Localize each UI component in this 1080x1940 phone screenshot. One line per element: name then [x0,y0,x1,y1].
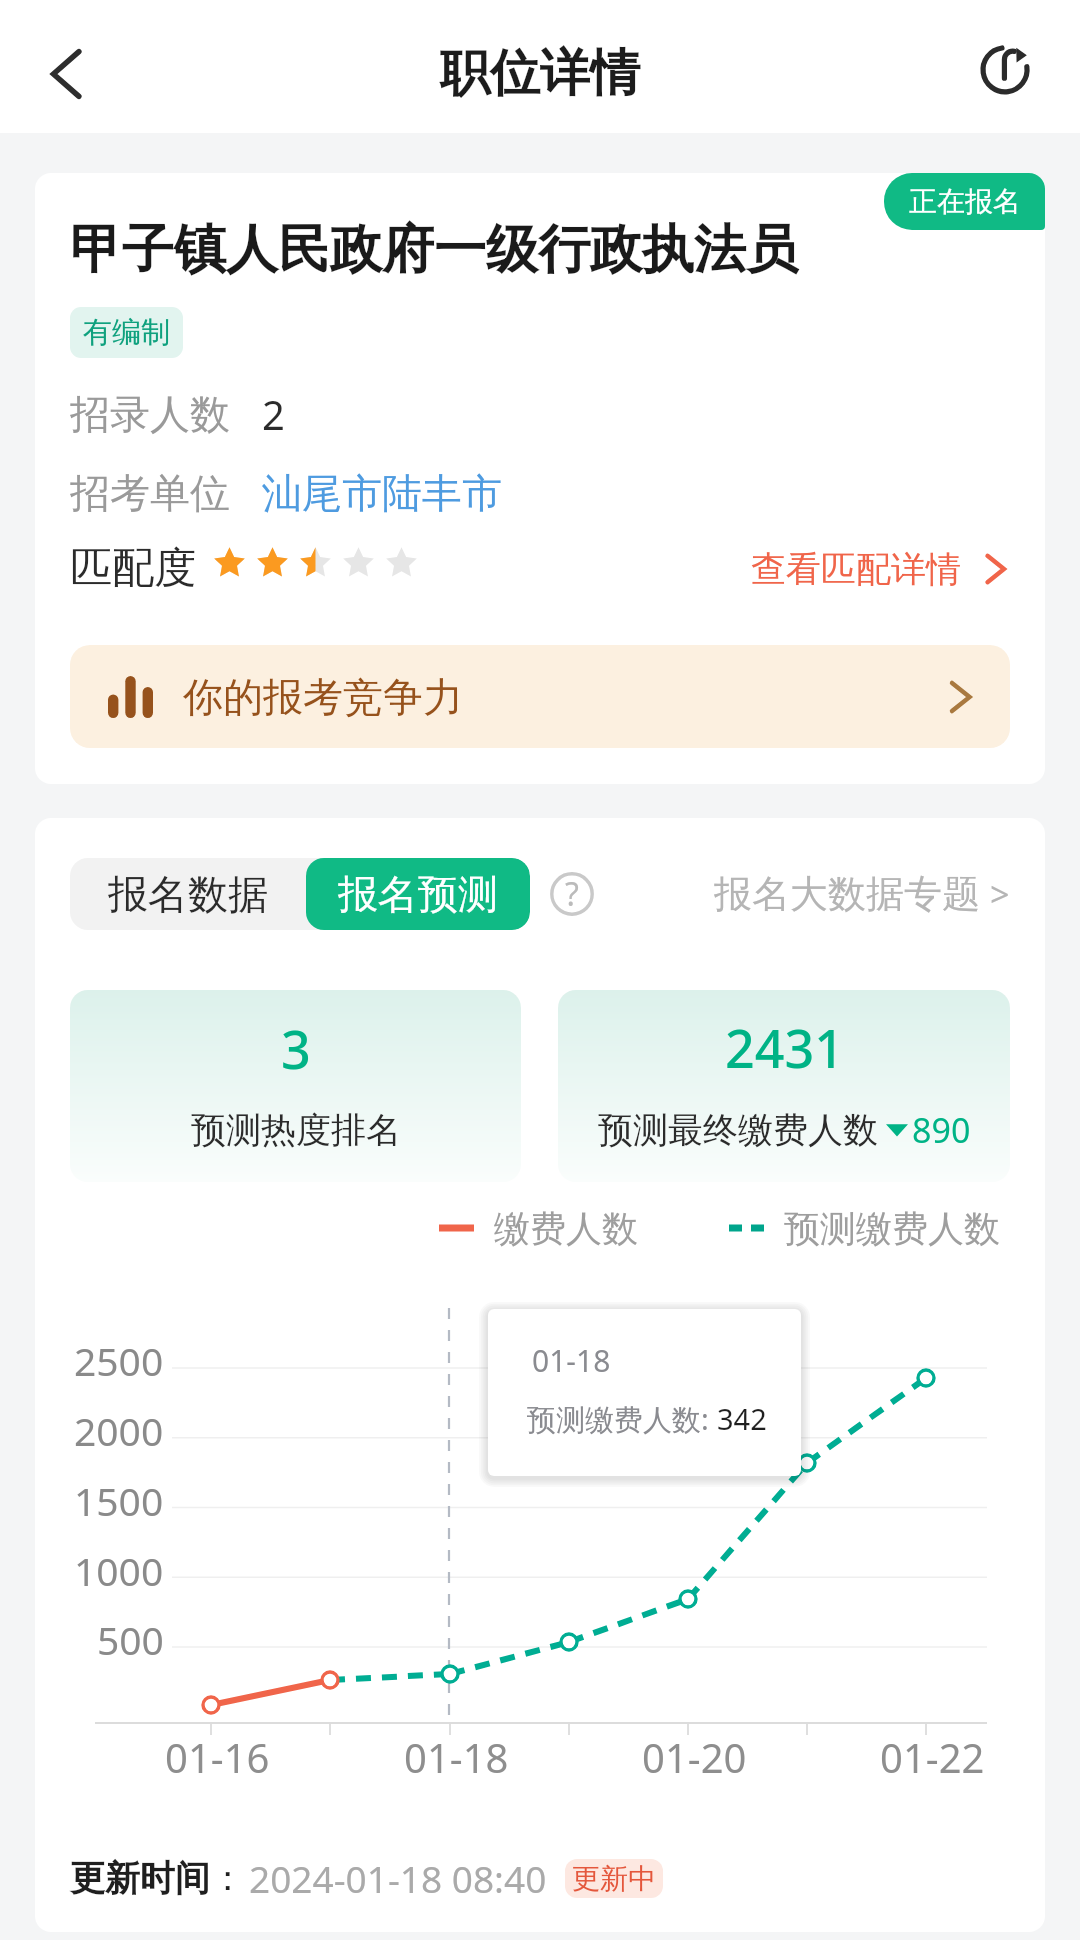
staticText: 1500 [74,1474,164,1527]
staticText: 更新中 [572,1861,656,1896]
staticText: 招考单位 [70,468,230,518]
button[interactable]: 报名预测 [306,858,530,930]
staticText: 招录人数 [70,389,230,439]
staticText: 汕尾市陆丰市 [262,468,502,518]
staticText: 01-22 [880,1730,985,1784]
staticText: 3 [281,1013,311,1084]
staticText: 预测缴费人数: [527,1399,717,1439]
button[interactable]: Back [20,28,112,120]
staticText: 缴费人数 [494,1206,638,1251]
staticText: 报名大数据专题 [714,870,980,918]
staticText: 2 [262,387,285,441]
staticText: ? [565,872,579,916]
staticText: 500 [97,1613,164,1666]
staticText: 预测最终缴费人数 [598,1108,878,1152]
staticText: 01-20 [642,1730,747,1784]
staticText: 查看匹配详情 [751,547,961,591]
staticText: 匹配度 [70,542,196,595]
button[interactable]: 查看匹配详情 [751,547,1010,591]
staticText: > [990,871,1010,917]
staticText: 1000 [74,1544,164,1597]
button[interactable]: 报名大数据专题 [714,870,1010,918]
staticText: 2024-01-18 08:40 [249,1853,547,1903]
staticText: ： [210,1856,245,1900]
staticText: 有编制 [83,314,170,351]
staticText: 890 [912,1107,971,1153]
staticText: 01-18 [404,1730,509,1784]
staticText: 01-18 [532,1340,611,1381]
staticText: 2500 [74,1334,164,1387]
staticText: 正在报名 [909,184,1021,219]
staticText: 预测缴费人数 [784,1206,1000,1251]
button[interactable]: Refresh [964,21,1056,113]
staticText: 职位详情 [440,42,640,105]
staticText: 报名数据 [108,869,268,919]
staticText: 你的报考竞争力 [183,672,463,722]
staticText: 甲子镇人民政府一级行政执法员 [70,217,798,283]
button[interactable]: Help [550,872,594,916]
button[interactable]: 你的报考竞争力 [70,645,1010,748]
staticText: 2000 [74,1404,164,1457]
staticText: 01-16 [165,1730,270,1784]
staticText: 2431 [725,1012,844,1083]
staticText: 报名预测 [338,869,498,919]
button[interactable]: 报名数据 [70,858,306,930]
staticText: 更新时间 [70,1856,210,1900]
staticText: 342 [717,1399,767,1438]
staticText: 预测热度排名 [191,1108,401,1152]
